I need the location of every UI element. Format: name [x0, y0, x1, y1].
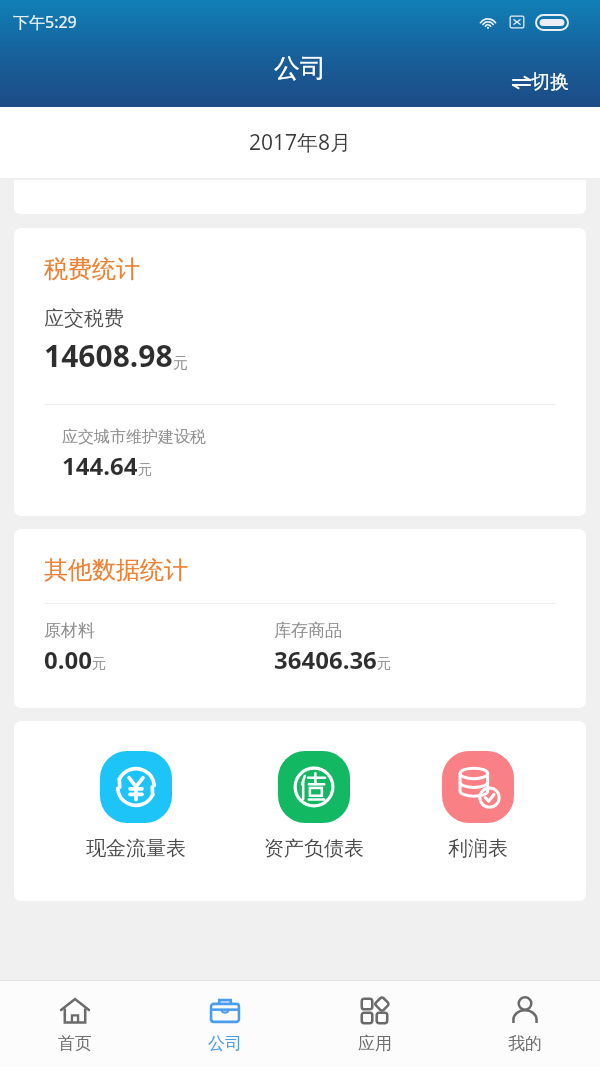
staticText: 资产负债表	[264, 836, 364, 861]
button[interactable]: 切换	[512, 70, 569, 94]
button[interactable]: 现金流量表	[80, 751, 192, 861]
staticText: 元	[377, 655, 391, 673]
staticText: 2017年8月	[249, 128, 352, 157]
button[interactable]: 公司	[150, 981, 300, 1067]
staticText: 切换	[531, 70, 569, 94]
staticText: 公司	[208, 1033, 242, 1054]
button[interactable]: 2017年8月	[0, 107, 600, 178]
staticText: 税费统计	[44, 254, 140, 284]
button[interactable]: 首页	[0, 981, 150, 1067]
staticText: 下午5:29	[13, 11, 77, 33]
staticText: 库存商品	[274, 620, 342, 641]
staticText: 144.64	[62, 449, 138, 482]
staticText: 公司	[274, 52, 326, 85]
staticText: 应交城市维护建设税	[62, 427, 206, 447]
button[interactable]: 应用	[300, 981, 450, 1067]
staticText: 首页	[58, 1033, 92, 1054]
staticText: 应用	[358, 1033, 392, 1054]
button[interactable]: 现金流量表	[14, 721, 586, 901]
staticText: 36406.36	[274, 643, 377, 676]
staticText: 0.00	[44, 643, 92, 676]
button[interactable]: 我的	[450, 981, 600, 1067]
staticText: 应交税费	[44, 306, 124, 331]
staticText: 元	[92, 655, 106, 673]
staticText: 元	[173, 354, 188, 373]
staticText: 其他数据统计	[44, 555, 188, 585]
button[interactable]: 资产负债表	[258, 751, 370, 861]
staticText: 元	[138, 461, 152, 479]
staticText: 原材料	[44, 620, 95, 641]
button[interactable]: 税费统计	[14, 228, 586, 516]
staticText: 利润表	[448, 836, 508, 861]
button[interactable]: 利润表	[436, 751, 520, 861]
staticText: 我的	[508, 1033, 542, 1054]
staticText: 现金流量表	[86, 836, 186, 861]
staticText: 14608.98	[44, 335, 173, 376]
button[interactable]: 其他数据统计	[14, 529, 586, 708]
